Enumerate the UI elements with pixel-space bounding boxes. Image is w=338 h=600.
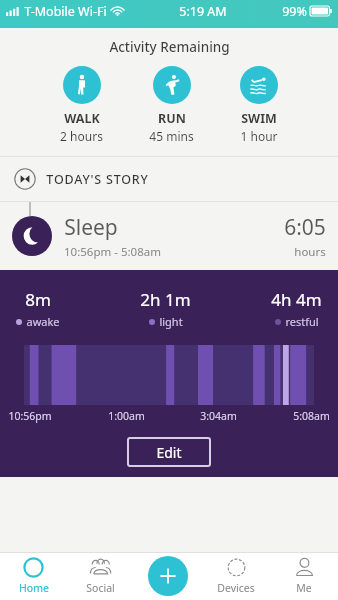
staticText: 45 mins <box>149 128 194 144</box>
staticText: Home <box>19 581 49 595</box>
staticText: 10:56pm - 5:08am <box>64 244 161 260</box>
button[interactable]: Devices <box>202 552 270 600</box>
staticText: Me <box>296 581 312 595</box>
staticText: 2 hours <box>60 128 103 144</box>
staticText: Social <box>86 581 115 595</box>
staticText: restful <box>285 314 319 329</box>
staticText: RUN <box>158 110 186 127</box>
staticText: 1 hour <box>240 128 278 144</box>
staticText: awake <box>26 314 60 329</box>
staticText: 5:19 AM <box>179 3 227 20</box>
button[interactable]: SWIM <box>234 66 284 144</box>
staticText: TODAY'S STORY <box>46 171 149 188</box>
staticText: 3:04am <box>200 409 237 423</box>
button[interactable]: Edit <box>127 437 211 467</box>
staticText: Sleep <box>64 213 118 242</box>
button[interactable]: TODAY'S STORY <box>0 157 338 201</box>
staticText: 1:00am <box>108 409 145 423</box>
staticText: 99% <box>282 3 307 20</box>
staticText: hours <box>294 244 326 260</box>
button[interactable]: Home <box>0 552 67 600</box>
staticText: 10:56pm <box>8 409 52 423</box>
staticText: Devices <box>217 581 255 595</box>
button[interactable]: Me <box>270 552 338 600</box>
button[interactable]: Social <box>67 552 134 600</box>
staticText: 5:08am <box>293 409 330 423</box>
staticText: Activity Remaining <box>109 38 230 56</box>
button[interactable]: WALK <box>54 66 109 144</box>
staticText: 4h 4m <box>271 288 322 311</box>
staticText: Edit <box>156 443 182 462</box>
button[interactable]: Sleep <box>0 202 338 270</box>
staticText: 2h 1m <box>140 288 191 311</box>
button[interactable]: Add <box>148 556 188 596</box>
staticText: 8m <box>25 288 51 311</box>
staticText: SWIM <box>241 110 277 127</box>
staticText: T-Mobile Wi-Fi <box>24 3 107 20</box>
button[interactable]: RUN <box>143 66 200 144</box>
staticText: WALK <box>64 110 100 127</box>
staticText: 6:05 <box>284 213 326 242</box>
staticText: light <box>159 314 183 329</box>
